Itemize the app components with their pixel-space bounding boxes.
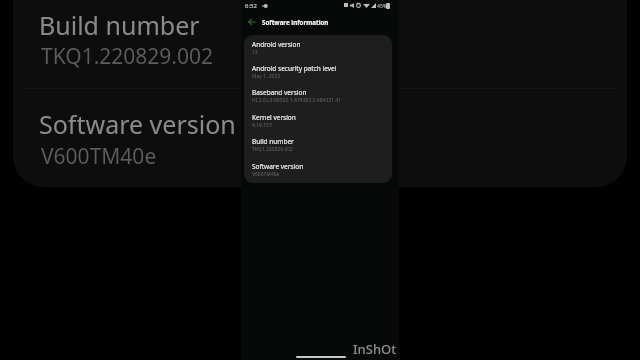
staticText: TKQ1.220829.002: [252, 146, 293, 153]
staticText: 45%: [377, 2, 388, 9]
staticText: HI.2.0.c3-00502-1.474383.2.484331.41: [252, 97, 342, 104]
button[interactable]: Kernel version: [244, 111, 392, 135]
staticText: Android version: [252, 40, 301, 49]
staticText: Software version: [252, 162, 304, 171]
staticText: Software version: [39, 107, 236, 141]
staticText: Build number: [39, 8, 200, 42]
staticText: TKQ1.220829.002: [41, 42, 214, 71]
staticText: Android security patch level: [252, 64, 337, 73]
button[interactable]: Android security patch level: [244, 62, 392, 86]
button[interactable]: Build number: [244, 135, 392, 159]
staticText: 4.19.157: [252, 122, 272, 129]
staticText: V600TM40e: [252, 171, 280, 178]
button[interactable]: Android version: [244, 38, 392, 62]
staticText: Baseband version: [252, 88, 307, 97]
staticText: May 1, 2023: [252, 73, 281, 80]
staticText: 13: [252, 49, 258, 56]
staticText: Kernel version: [252, 113, 296, 122]
button[interactable]: Baseband version: [244, 86, 392, 110]
staticText: V600TM40e: [41, 142, 157, 171]
staticText: Build number: [252, 137, 294, 146]
staticText: InShOt: [353, 340, 397, 358]
staticText: 6:52: [245, 2, 257, 10]
button[interactable]: Software version: [244, 160, 392, 183]
button[interactable]: Back: [245, 15, 259, 29]
staticText: Software information: [262, 18, 329, 26]
